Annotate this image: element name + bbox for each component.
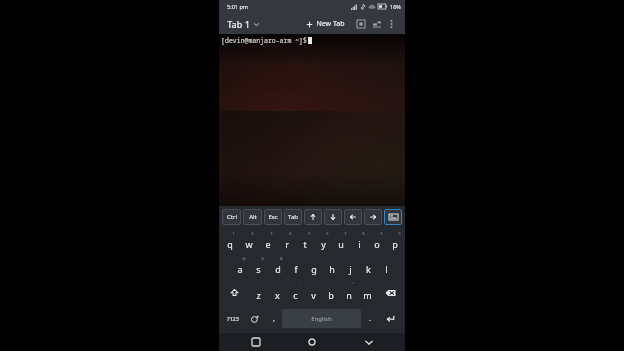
staticText: c <box>293 289 298 301</box>
button[interactable]: 0 <box>386 230 404 254</box>
staticText: j <box>349 263 352 275</box>
staticText: . <box>369 314 371 324</box>
staticText: r <box>285 238 289 250</box>
button[interactable]: & <box>268 255 287 279</box>
staticText: [devin@manjaro-arm ~]$ <box>221 36 307 45</box>
button[interactable]: Ctrl <box>222 209 241 225</box>
button[interactable]: New session <box>370 17 383 30</box>
staticText: Tab <box>288 213 298 221</box>
staticText: Ctrl <box>227 213 237 221</box>
button[interactable]: 7 <box>332 230 350 254</box>
button[interactable]: . <box>361 306 378 331</box>
staticText: Esc <box>268 213 278 221</box>
staticText: Tab 1 <box>227 18 250 30</box>
button[interactable]: k <box>359 255 377 279</box>
staticText: 2 <box>251 231 254 236</box>
button[interactable]: Arrow up <box>304 209 322 225</box>
button[interactable]: ?123 <box>222 306 244 331</box>
button[interactable]: Backspace <box>376 280 404 305</box>
button[interactable]: # <box>249 255 268 279</box>
staticText: 1 <box>232 231 235 236</box>
staticText: 9 <box>380 231 383 236</box>
staticText: b <box>328 289 334 301</box>
staticText: n <box>346 289 352 301</box>
staticText: 3 <box>270 231 273 236</box>
staticText: # <box>261 256 264 261</box>
button[interactable]: g <box>305 255 323 279</box>
staticText: w <box>245 238 253 250</box>
button[interactable]: Arrow down <box>324 209 342 225</box>
button[interactable]: Arrow right <box>364 209 382 225</box>
staticText: 0 <box>398 231 401 236</box>
staticText: 5 <box>308 231 311 236</box>
staticText: 7 <box>344 231 347 236</box>
button[interactable]: @ <box>230 255 249 279</box>
staticText: ^ <box>352 281 355 286</box>
staticText: s <box>256 263 261 275</box>
button[interactable]: m <box>358 280 376 305</box>
button[interactable]: Enter <box>378 306 402 331</box>
button[interactable]: 1 <box>220 230 239 254</box>
button[interactable]: f <box>287 255 305 279</box>
staticText: y <box>321 238 326 250</box>
button[interactable]: Home <box>292 333 332 351</box>
staticText: l <box>385 263 388 275</box>
button[interactable]: Keyboard <box>384 209 402 225</box>
staticText: Alt <box>249 213 257 221</box>
staticText: a <box>237 263 243 275</box>
staticText: z <box>256 289 261 301</box>
staticText: English <box>311 315 332 323</box>
staticText: 8 <box>362 231 365 236</box>
button[interactable]: l <box>377 255 395 279</box>
staticText: p <box>392 238 398 250</box>
staticText: New Tab <box>316 19 345 29</box>
staticText: v <box>311 289 316 301</box>
staticText: i <box>358 238 361 250</box>
button[interactable]: Recents <box>236 333 276 351</box>
button[interactable]: Emoji <box>244 306 265 331</box>
staticText: ?123 <box>227 315 239 322</box>
staticText: , <box>273 314 275 324</box>
button[interactable]: Tab <box>284 209 302 225</box>
button[interactable]: , <box>265 306 282 331</box>
button[interactable]: English <box>282 309 361 328</box>
button[interactable]: x <box>268 280 286 305</box>
button[interactable]: Tab 1 <box>226 16 261 32</box>
button[interactable]: j <box>341 255 359 279</box>
button[interactable]: Shift <box>220 280 249 305</box>
button[interactable]: 5 <box>296 230 314 254</box>
button[interactable]: 8 <box>350 230 368 254</box>
button[interactable]: More options <box>385 17 398 30</box>
button[interactable]: 9 <box>368 230 386 254</box>
staticText: 6 <box>326 231 329 236</box>
button[interactable]: 6 <box>314 230 332 254</box>
staticText: m <box>363 289 372 301</box>
staticText: e <box>265 238 271 250</box>
button[interactable]: Toggle keyboard <box>354 17 367 30</box>
button[interactable]: 2 <box>239 230 258 254</box>
button[interactable]: Esc <box>264 209 282 225</box>
button[interactable]: h <box>323 255 341 279</box>
button[interactable]: v <box>304 280 322 305</box>
staticText: t <box>303 238 307 250</box>
button[interactable]: ' <box>286 280 304 305</box>
staticText: f <box>294 263 298 275</box>
staticText: x <box>275 289 280 301</box>
button[interactable]: Arrow left <box>344 209 362 225</box>
staticText: g <box>311 263 317 275</box>
button[interactable]: Back <box>349 333 389 351</box>
staticText: q <box>227 238 233 250</box>
button[interactable]: 4 <box>277 230 296 254</box>
staticText: @ <box>242 256 246 261</box>
button[interactable]: b <box>322 280 340 305</box>
button[interactable]: z <box>249 280 268 305</box>
button[interactable]: Alt <box>243 209 262 225</box>
staticText: 16% <box>390 3 401 10</box>
staticText: d <box>275 263 281 275</box>
button[interactable]: ^ <box>340 280 358 305</box>
button[interactable]: 3 <box>258 230 277 254</box>
staticText: 5:01 pm <box>227 3 248 10</box>
button[interactable]: New Tab <box>304 17 347 31</box>
staticText: k <box>366 263 371 275</box>
staticText: u <box>338 238 344 250</box>
